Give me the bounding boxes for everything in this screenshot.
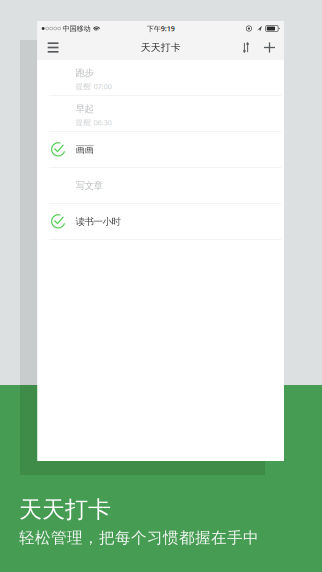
button[interactable]: 写文章 <box>37 168 284 203</box>
staticText: 跑步 <box>75 67 93 79</box>
staticText: 下午9:19 <box>147 24 175 33</box>
staticText: 提醒 06:30 <box>75 117 111 127</box>
staticText: 中国移动 <box>62 24 90 33</box>
staticText: 轻松管理，把每个习惯都握在手中 <box>19 528 259 548</box>
button[interactable]: Add habit <box>257 35 282 59</box>
staticText: 天天打卡 <box>141 41 181 54</box>
staticText: 提醒 07:00 <box>75 81 111 91</box>
button[interactable]: Menu <box>40 35 66 59</box>
button[interactable]: 读书一小时 <box>37 204 284 239</box>
button[interactable]: 跑步 <box>37 60 284 95</box>
button[interactable]: 画画 <box>37 132 284 167</box>
staticText: 读书一小时 <box>75 216 120 228</box>
staticText: 写文章 <box>75 180 102 192</box>
staticText: 画画 <box>75 144 93 156</box>
staticText: 早起 <box>75 103 93 115</box>
staticText: 天天打卡 <box>19 495 111 524</box>
button[interactable]: Sort habits <box>235 35 257 59</box>
button[interactable]: 早起 <box>37 96 284 131</box>
